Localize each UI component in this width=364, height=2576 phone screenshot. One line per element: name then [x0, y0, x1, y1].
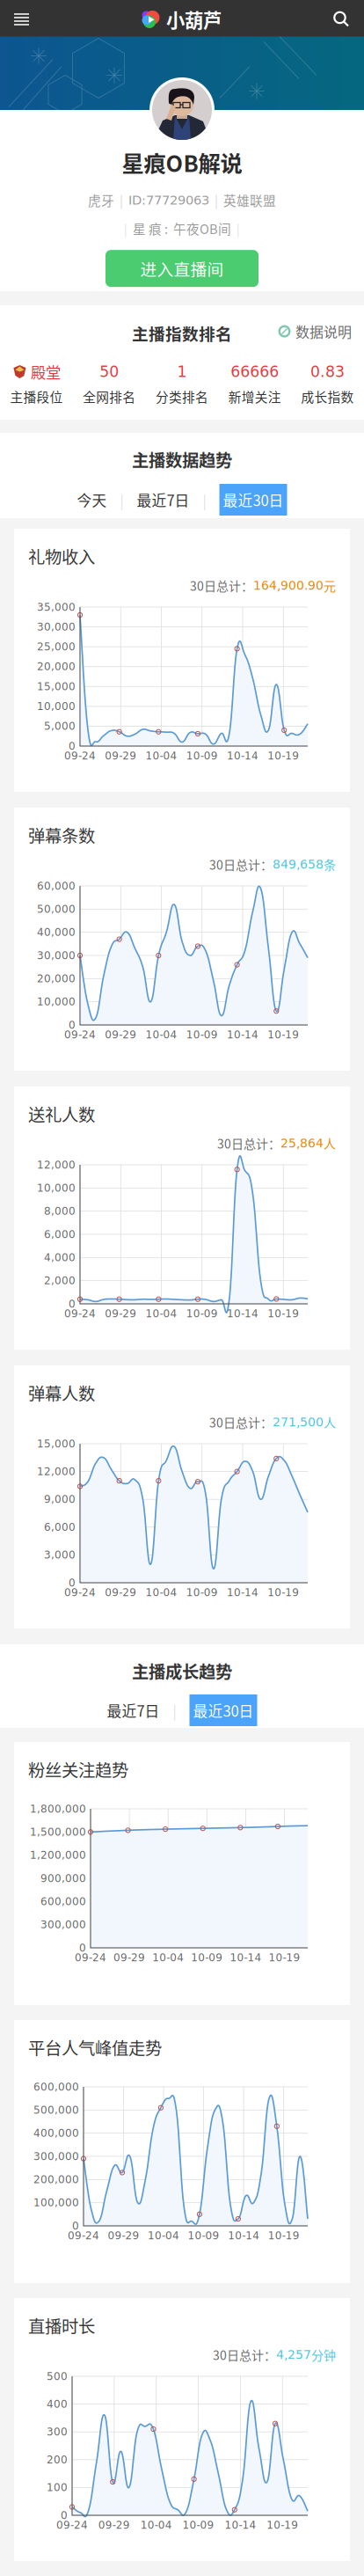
staticText: 殿堂: [31, 361, 61, 383]
staticText: 100,000: [33, 2197, 79, 2209]
staticText: 主播指数排名: [132, 321, 232, 345]
button[interactable]: 最近7日: [107, 1694, 160, 1726]
staticText: 20,000: [37, 660, 76, 673]
staticText: 8,000: [44, 1205, 76, 1217]
staticText: 星 痕 : 午夜OB间: [127, 219, 237, 238]
staticText: 10-14: [227, 1028, 258, 1041]
staticText: 礼物收入: [28, 544, 95, 568]
staticText: 新增关注: [228, 387, 281, 406]
staticText: |: [173, 1700, 176, 1721]
staticText: 人: [324, 1413, 336, 1431]
staticText: 10-04: [148, 2229, 179, 2242]
staticText: 弹幕人数: [28, 1380, 95, 1405]
staticText: 09-29: [105, 1307, 136, 1320]
staticText: 6,000: [44, 1521, 76, 1533]
staticText: 30日总计：: [217, 1134, 280, 1152]
staticText: 09-29: [105, 1586, 136, 1599]
staticText: 1,800,000: [30, 1803, 86, 1815]
staticText: 30日总计：: [190, 577, 253, 594]
staticText: 09-24: [75, 1951, 106, 1964]
staticText: 粉丝关注趋势: [28, 1757, 128, 1782]
staticText: 3,000: [44, 1549, 76, 1561]
staticText: 最近7日: [137, 489, 189, 510]
staticText: 10-09: [186, 1028, 218, 1041]
staticText: 25,864: [280, 1136, 324, 1150]
staticText: 1,500,000: [30, 1826, 86, 1838]
staticText: |: [203, 490, 206, 510]
staticText: 20,000: [37, 972, 76, 985]
staticText: 10-19: [267, 2519, 298, 2531]
staticText: 35,000: [37, 601, 76, 613]
staticText: 平台人气峰值走势: [28, 2035, 162, 2060]
staticText: 09-29: [108, 2229, 139, 2242]
staticText: 最近7日: [107, 1700, 160, 1721]
staticText: 10-04: [140, 2519, 172, 2531]
staticText: 5,000: [44, 720, 76, 732]
staticText: 50: [100, 363, 119, 381]
staticText: 最近30日: [193, 1700, 254, 1721]
staticText: 送礼人数: [28, 1101, 95, 1126]
staticText: 人: [324, 1134, 336, 1152]
staticText: 300,000: [33, 2150, 79, 2163]
staticText: 10-19: [267, 1028, 299, 1041]
staticText: 10-14: [228, 2229, 259, 2242]
staticText: 10-09: [186, 1307, 218, 1320]
staticText: 60,000: [37, 880, 76, 892]
staticText: 100: [47, 2481, 68, 2494]
staticText: 09-24: [64, 1586, 96, 1599]
staticText: 500: [47, 2370, 68, 2382]
staticText: ID:77729063: [128, 192, 209, 208]
staticText: 1: [177, 363, 187, 381]
staticText: 10-09: [186, 750, 218, 762]
staticText: 2,000: [44, 1275, 76, 1287]
staticText: 0.83: [310, 363, 345, 381]
staticText: 25,000: [37, 641, 76, 653]
staticText: 09-24: [64, 1307, 96, 1320]
staticText: 今天: [77, 489, 107, 510]
staticText: 分钟: [311, 2346, 336, 2364]
staticText: 300,000: [40, 1919, 86, 1931]
staticText: 10-19: [268, 2229, 300, 2242]
staticText: 1,200,000: [30, 1849, 86, 1861]
staticText: 15,000: [37, 680, 76, 693]
staticText: 30,000: [37, 949, 76, 962]
button[interactable]: 进入直播间: [106, 250, 258, 287]
button[interactable]: 今天: [77, 484, 107, 516]
staticText: 10,000: [37, 996, 76, 1008]
staticText: |: [237, 220, 240, 237]
staticText: 0: [69, 740, 76, 752]
staticText: 09-24: [68, 2229, 99, 2242]
button[interactable]: 最近7日: [137, 484, 189, 516]
staticText: 0: [69, 1019, 76, 1031]
staticText: 4,257: [276, 2348, 311, 2362]
staticText: 09-24: [64, 750, 96, 762]
staticText: 09-29: [98, 2519, 130, 2531]
staticText: 英雄联盟: [223, 191, 276, 209]
staticText: 900,000: [40, 1872, 86, 1884]
staticText: 10-14: [230, 1951, 261, 1964]
button[interactable]: Search: [323, 0, 364, 39]
staticText: 30日总计：: [209, 855, 273, 873]
button[interactable]: 最近30日: [219, 484, 287, 516]
staticText: 全网排名: [83, 387, 136, 406]
button[interactable]: 最近30日: [189, 1694, 257, 1726]
staticText: 直播时长: [28, 2313, 95, 2338]
staticText: 12,000: [37, 1159, 76, 1171]
staticText: 200,000: [33, 2173, 79, 2186]
staticText: 30日总计：: [213, 2346, 276, 2364]
staticText: 300: [47, 2426, 68, 2438]
staticText: 最近30日: [223, 489, 284, 510]
staticText: 15,000: [37, 1438, 76, 1450]
staticText: 09-29: [114, 1951, 145, 1964]
staticText: 10-04: [152, 1951, 184, 1964]
button[interactable]: 数据说明: [278, 321, 352, 342]
staticText: 条: [324, 855, 336, 873]
button[interactable]: Menu: [0, 0, 40, 39]
staticText: 0: [69, 1577, 76, 1589]
staticText: 10-09: [191, 1951, 223, 1964]
staticText: 164,900.90: [253, 578, 324, 593]
staticText: 虎牙: [88, 191, 114, 209]
staticText: |: [124, 220, 127, 237]
staticText: 10-04: [146, 750, 177, 762]
